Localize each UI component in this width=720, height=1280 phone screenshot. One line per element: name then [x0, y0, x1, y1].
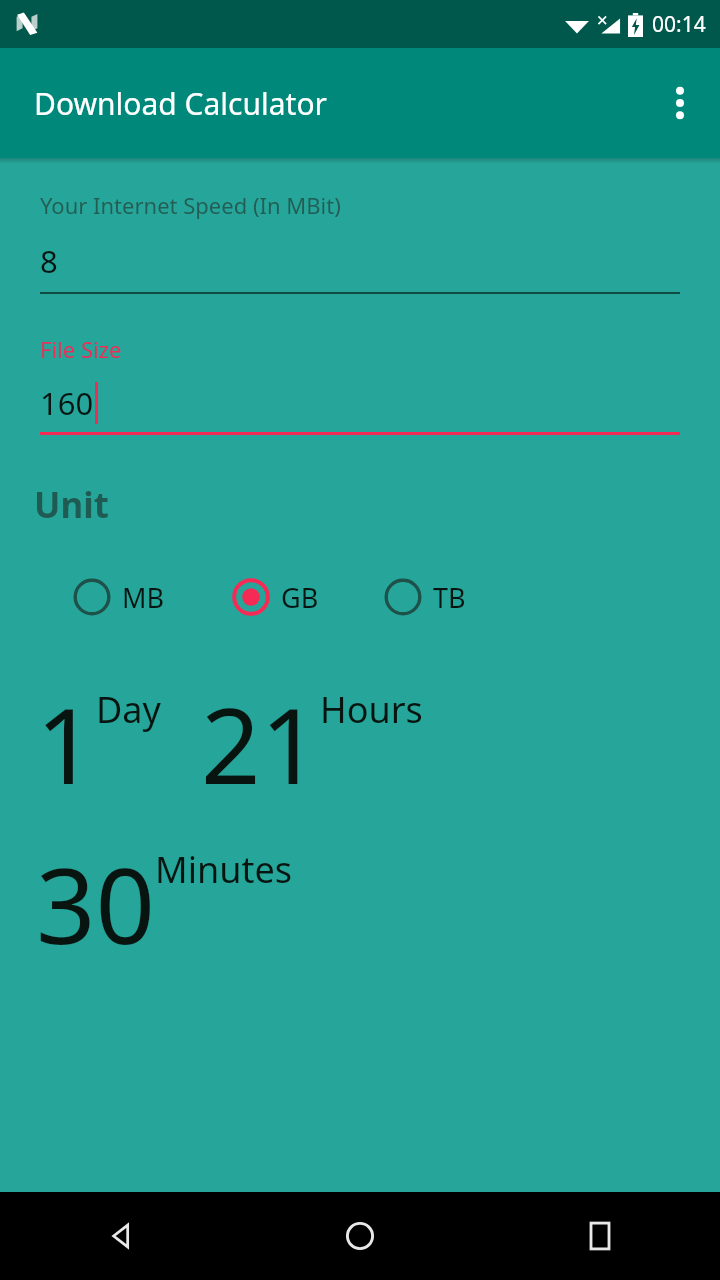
staticText: 21 [201, 673, 320, 815]
staticText: Download Calculator [34, 83, 327, 124]
staticText: Your Internet Speed (In MBit) [40, 190, 341, 220]
button[interactable]: TB [381, 573, 468, 621]
staticText: Minutes [155, 845, 292, 894]
staticText: 8 [40, 240, 58, 282]
staticText: 30 [36, 833, 155, 975]
staticText: GB [281, 579, 319, 616]
staticText: 1 [36, 673, 96, 815]
staticText: Day [96, 685, 161, 734]
button[interactable]: More options [652, 75, 708, 131]
staticText: MB [122, 579, 165, 616]
staticText: File Size [40, 334, 122, 364]
staticText: 160 [40, 382, 94, 424]
staticText: Unit [34, 481, 109, 529]
button[interactable]: Back [0, 1192, 240, 1280]
staticText: Hours [320, 685, 423, 734]
button[interactable]: Recent apps [480, 1192, 720, 1280]
button[interactable]: MB [70, 573, 167, 621]
staticText: 00:14 [652, 10, 706, 39]
button[interactable]: GB [229, 573, 321, 621]
staticText: TB [433, 579, 466, 616]
button[interactable]: Home [240, 1192, 480, 1280]
